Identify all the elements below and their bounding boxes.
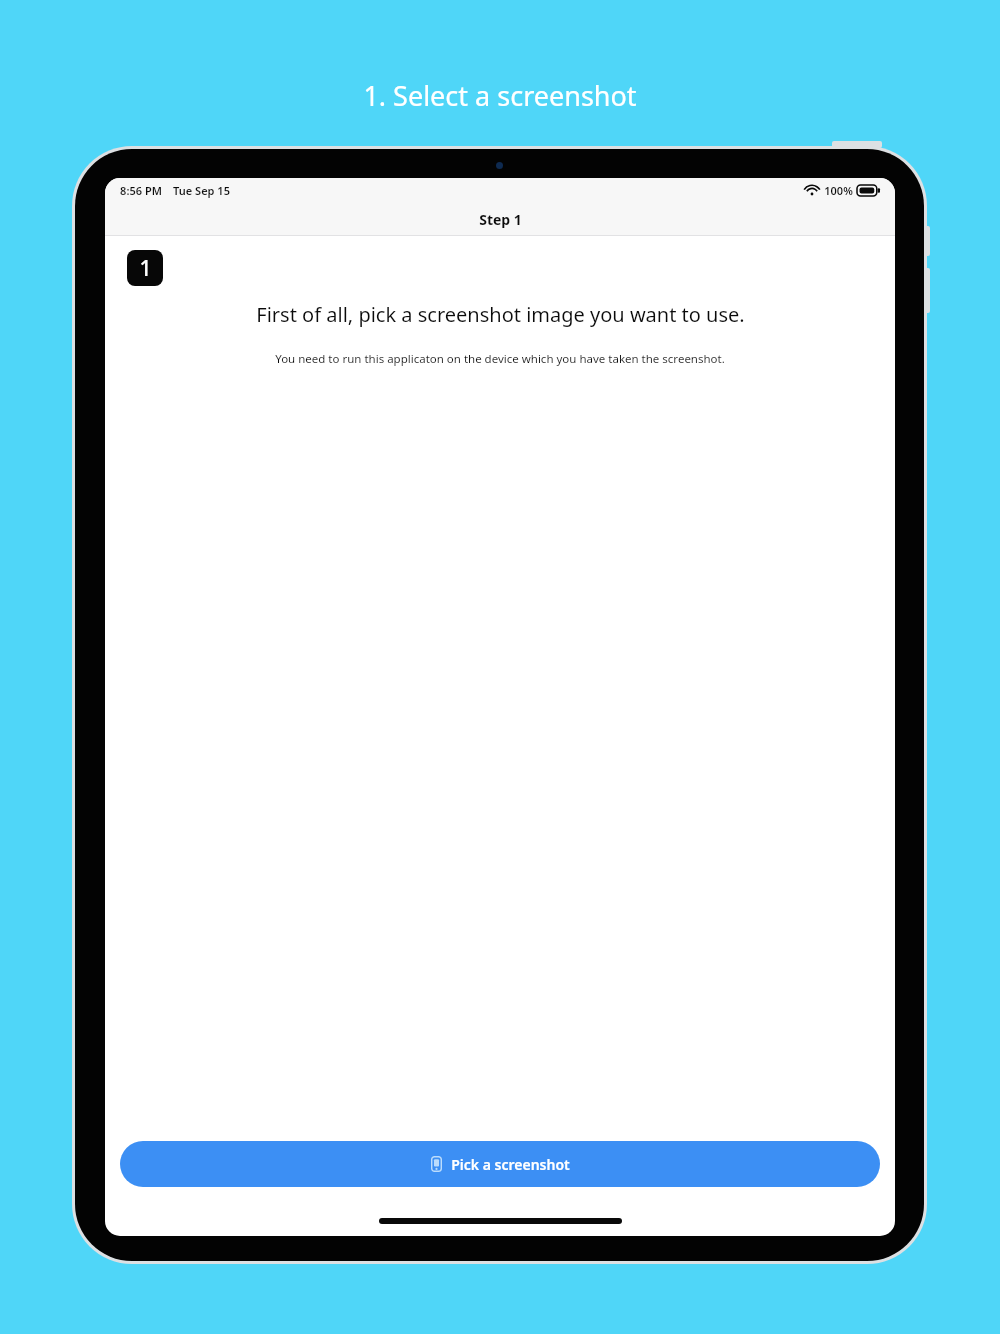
staticText: 1. Select a screenshot bbox=[363, 77, 637, 114]
staticText: Tue Sep 15 bbox=[173, 183, 230, 198]
staticText: Step 1 bbox=[479, 210, 522, 229]
staticText: 1 bbox=[139, 254, 152, 283]
button[interactable]: Step number 1 bbox=[127, 250, 163, 286]
staticText: 100% bbox=[824, 183, 853, 198]
staticText: You need to run this applicaton on the d… bbox=[275, 351, 725, 367]
button[interactable]: Phone bbox=[120, 1141, 880, 1187]
staticText: Pick a screenshot bbox=[451, 1155, 570, 1174]
staticText: First of all, pick a screenshot image yo… bbox=[256, 301, 745, 328]
staticText: 8:56 PM bbox=[120, 183, 162, 198]
other: Phone bbox=[431, 1156, 442, 1172]
